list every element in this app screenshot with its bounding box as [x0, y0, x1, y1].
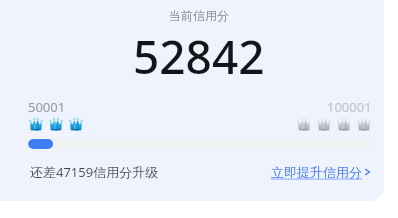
other: 前往提升信用分 — [363, 166, 372, 178]
staticText: 100001 — [327, 98, 372, 116]
staticText: 52842 — [133, 25, 265, 88]
staticText: 50001 — [28, 98, 66, 116]
staticText: 当前信用分 — [169, 8, 229, 23]
button[interactable]: 立即提升信用分 — [271, 164, 372, 180]
staticText: 还差47159信用分升级 — [30, 163, 159, 181]
staticText: 立即提升信用分 — [271, 164, 362, 180]
